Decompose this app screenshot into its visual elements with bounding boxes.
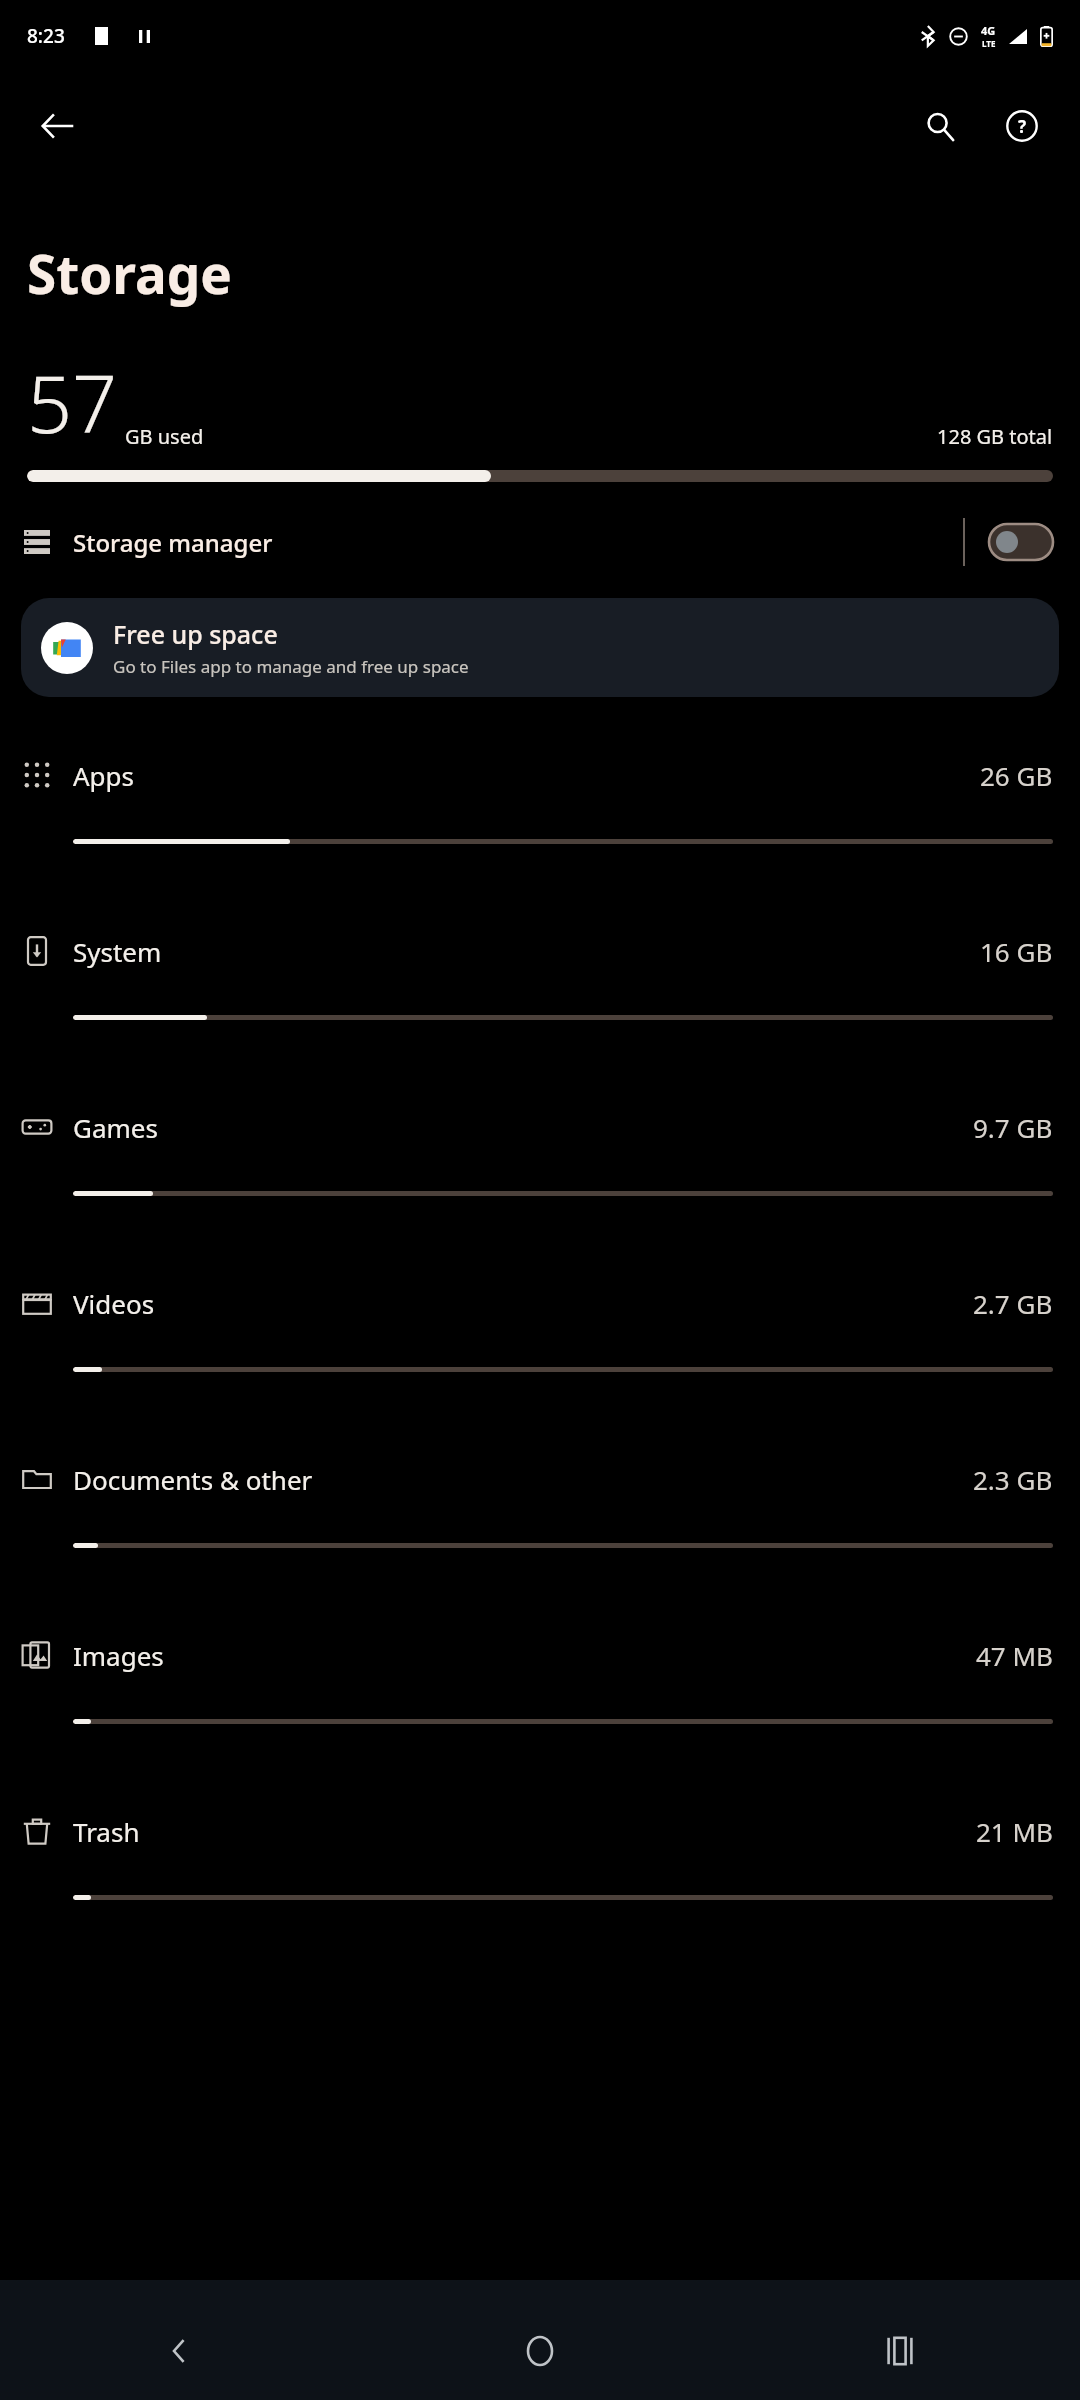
staticText: 128 GB total [937, 423, 1053, 450]
button[interactable]: Videos [0, 1239, 1080, 1415]
button[interactable]: Games [0, 1063, 1080, 1239]
staticText: Images [73, 1638, 164, 1673]
staticText: Games [73, 1110, 158, 1145]
staticText: 47 MB [976, 1638, 1053, 1673]
button[interactable]: Free up space [21, 598, 1059, 697]
staticText: Go to Files app to manage and free up sp… [113, 655, 469, 678]
staticText: 8:23 [27, 23, 65, 49]
staticText: 16 GB [980, 934, 1053, 969]
staticText: Storage manager [73, 526, 273, 559]
staticText: Storage [27, 237, 232, 309]
button[interactable]: Apps [0, 711, 1080, 887]
button[interactable]: Storage manager toggle [989, 524, 1053, 560]
button[interactable]: System [0, 887, 1080, 1063]
staticText: 26 GB [980, 758, 1053, 793]
staticText: Documents & other [73, 1462, 313, 1497]
staticText: 9.7 GB [973, 1110, 1053, 1145]
button[interactable]: Home [360, 2302, 720, 2400]
staticText: Apps [73, 758, 135, 793]
staticText: Videos [73, 1286, 155, 1321]
button[interactable]: Documents & other [0, 1415, 1080, 1591]
staticText: 57 [27, 349, 118, 457]
button[interactable]: Help [986, 90, 1058, 162]
button[interactable]: Search [904, 90, 976, 162]
button[interactable]: Back [22, 90, 94, 162]
staticText: Free up space [113, 617, 278, 651]
staticText: Trash [73, 1814, 140, 1849]
button[interactable]: Trash [0, 1767, 1080, 1943]
staticText: 21 MB [976, 1814, 1053, 1849]
button[interactable]: Recent apps [720, 2302, 1080, 2400]
button[interactable]: Back [0, 2302, 360, 2400]
button[interactable]: Storage manager [0, 504, 1080, 580]
staticText: 2.7 GB [973, 1286, 1053, 1321]
staticText: ? [1018, 115, 1027, 138]
staticText: GB used [125, 423, 204, 450]
button[interactable]: Images [0, 1591, 1080, 1767]
staticText: LTE [982, 38, 996, 49]
staticText: 4G [981, 23, 996, 38]
staticText: 2.3 GB [973, 1462, 1053, 1497]
staticText: System [73, 934, 162, 969]
